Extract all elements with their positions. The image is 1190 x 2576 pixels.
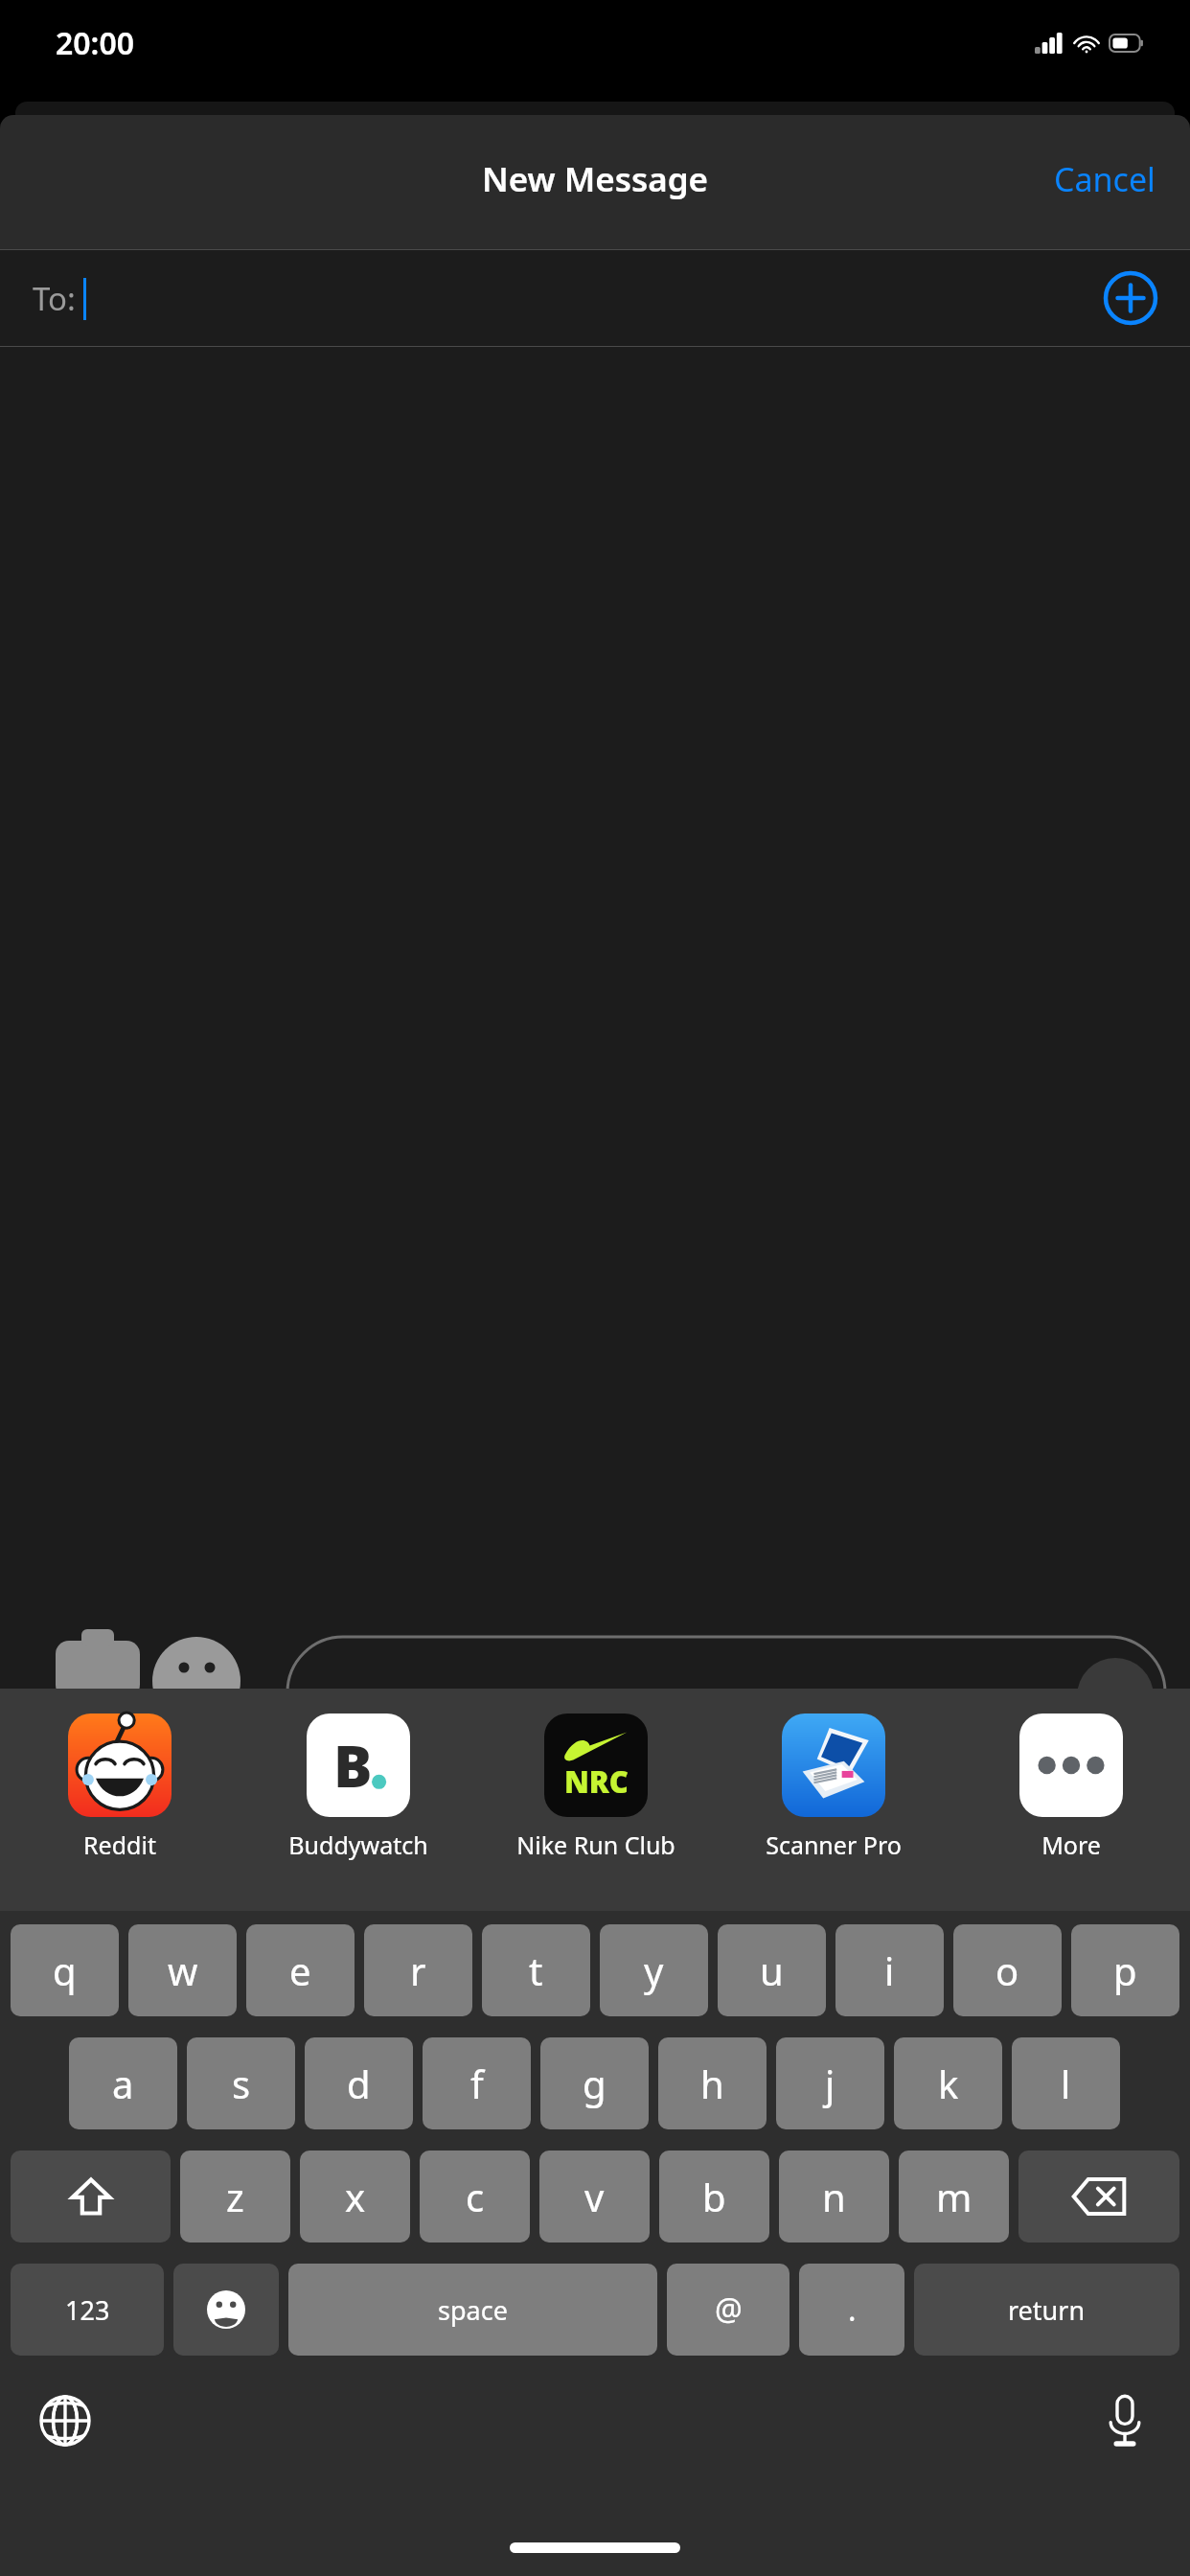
button[interactable]: d	[305, 2037, 413, 2129]
button[interactable]: space	[288, 2264, 657, 2356]
button[interactable]: z	[180, 2150, 290, 2242]
staticText: 123	[65, 2292, 110, 2328]
button[interactable]: y	[600, 1924, 708, 2016]
staticText: d	[347, 2058, 371, 2109]
button[interactable]: u	[718, 1924, 826, 2016]
button[interactable]: c	[420, 2150, 530, 2242]
button[interactable]: More	[952, 1713, 1190, 1911]
button[interactable]: Cancel	[1044, 149, 1165, 209]
staticText: B	[333, 1726, 373, 1805]
staticText: n	[822, 2171, 846, 2222]
button[interactable]: 123	[11, 2264, 164, 2356]
staticText: p	[1113, 1944, 1137, 1996]
button[interactable]: j	[776, 2037, 884, 2129]
button[interactable]: t	[482, 1924, 590, 2016]
staticText: k	[938, 2058, 959, 2109]
button[interactable]: h	[658, 2037, 767, 2129]
staticText: v	[584, 2171, 605, 2222]
staticText: @	[715, 2288, 743, 2331]
button[interactable]: k	[894, 2037, 1002, 2129]
button[interactable]: e	[246, 1924, 355, 2016]
button[interactable]: q	[11, 1924, 119, 2016]
staticText: r	[410, 1944, 426, 1996]
button[interactable]: To:	[0, 250, 1190, 346]
staticText: z	[226, 2171, 244, 2222]
button[interactable]: Add contact	[1104, 271, 1157, 325]
button[interactable]: Dictate	[1092, 2388, 1157, 2453]
button[interactable]: @	[667, 2264, 790, 2356]
staticText: f	[470, 2058, 484, 2109]
staticText: New Message	[482, 156, 709, 202]
button[interactable]: s	[187, 2037, 295, 2129]
button[interactable]: v	[539, 2150, 650, 2242]
button[interactable]: f	[423, 2037, 531, 2129]
staticText: More	[1041, 1828, 1101, 1861]
staticText: t	[529, 1944, 543, 1996]
button[interactable]: m	[899, 2150, 1009, 2242]
staticText: x	[345, 2171, 366, 2222]
button[interactable]: b	[659, 2150, 769, 2242]
staticText: w	[168, 1944, 198, 1996]
button[interactable]: Change keyboard	[33, 2388, 98, 2453]
button[interactable]: r	[364, 1924, 472, 2016]
button[interactable]: g	[540, 2037, 649, 2129]
button[interactable]: l	[1012, 2037, 1120, 2129]
button[interactable]: Scanner Pro	[715, 1713, 952, 1911]
staticText: j	[825, 2058, 835, 2109]
button[interactable]: Reddit	[0, 1713, 239, 1911]
staticText: u	[760, 1944, 784, 1996]
staticText: s	[232, 2058, 251, 2109]
staticText: g	[583, 2058, 606, 2109]
button[interactable]: i	[835, 1924, 944, 2016]
staticText: Scanner Pro	[766, 1828, 902, 1861]
button[interactable]: Shift	[11, 2150, 171, 2242]
button[interactable]: B	[239, 1713, 477, 1911]
button[interactable]: x	[300, 2150, 410, 2242]
staticText: To:	[33, 277, 76, 320]
button[interactable]: w	[128, 1924, 237, 2016]
staticText: e	[289, 1944, 311, 1996]
button[interactable]: p	[1071, 1924, 1179, 2016]
staticText: return	[1008, 2292, 1086, 2328]
button[interactable]: NRC	[477, 1713, 715, 1911]
button[interactable]: o	[953, 1924, 1062, 2016]
staticText: 20:00	[56, 22, 135, 64]
staticText: h	[700, 2058, 724, 2109]
staticText: space	[438, 2292, 508, 2328]
staticText: q	[53, 1944, 77, 1996]
staticText: c	[466, 2171, 485, 2222]
staticText: i	[884, 1944, 895, 1996]
button[interactable]: return	[914, 2264, 1179, 2356]
staticText: a	[112, 2058, 134, 2109]
button[interactable]: Backspace	[1018, 2150, 1179, 2242]
staticText: Buddywatch	[288, 1828, 428, 1861]
staticText: Nike Run Club	[516, 1828, 675, 1861]
staticText: Reddit	[83, 1828, 156, 1861]
staticText: y	[644, 1944, 664, 1996]
button[interactable]: .	[799, 2264, 904, 2356]
staticText: o	[995, 1944, 1019, 1996]
staticText: b	[702, 2171, 726, 2222]
staticText: m	[936, 2171, 973, 2222]
button[interactable]: n	[779, 2150, 889, 2242]
button[interactable]: Emoji	[173, 2264, 279, 2356]
button[interactable]: a	[69, 2037, 177, 2129]
staticText: NRC	[564, 1761, 629, 1802]
staticText: .	[848, 2288, 857, 2331]
staticText: l	[1061, 2058, 1071, 2109]
staticText: Cancel	[1054, 157, 1156, 201]
